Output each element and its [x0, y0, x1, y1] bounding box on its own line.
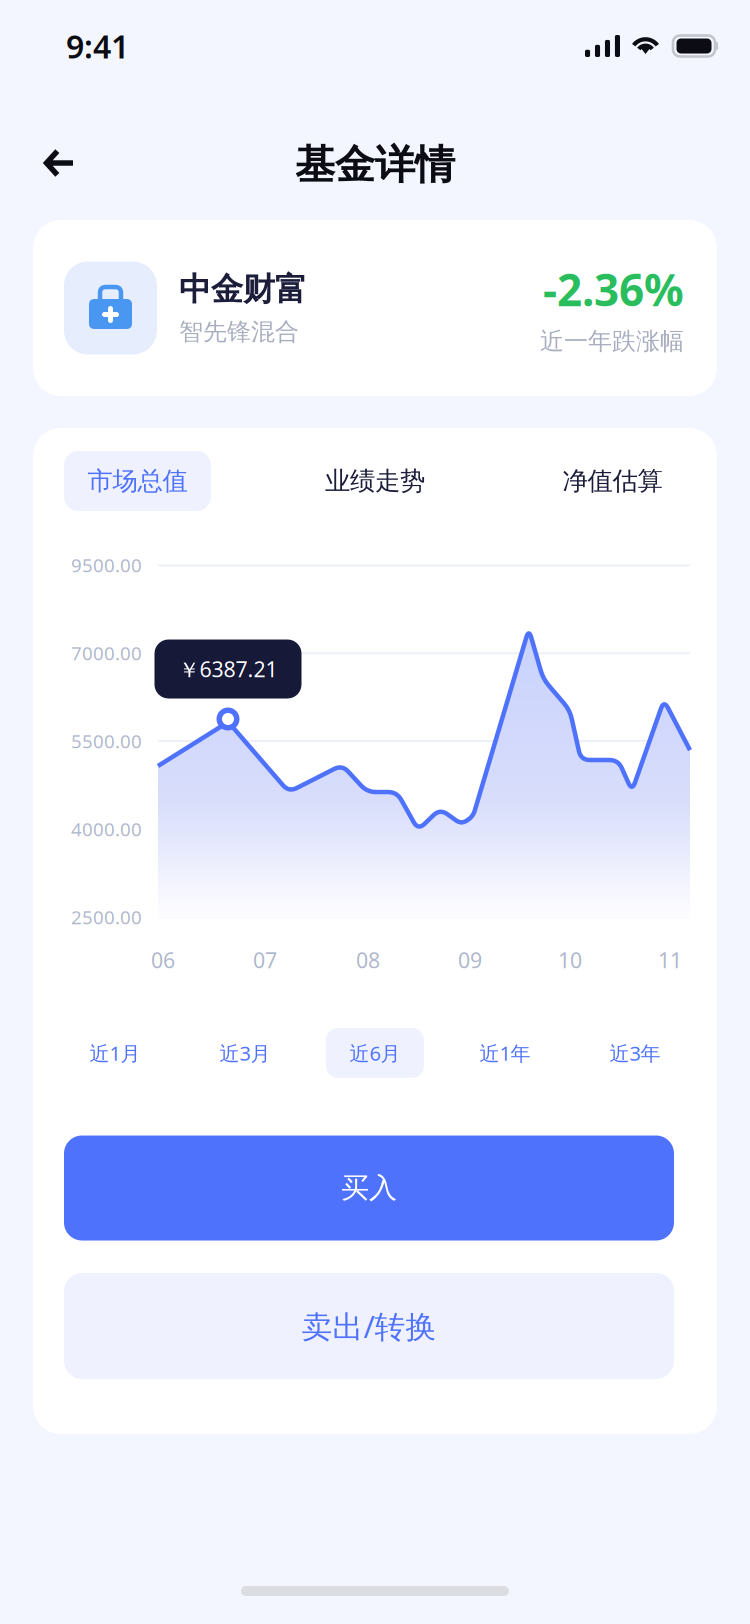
- staticText: 卖出/转换: [301, 1306, 436, 1346]
- button[interactable]: 卖出/转换: [64, 1273, 674, 1379]
- staticText: 9500.00: [71, 553, 142, 577]
- staticText: 7000.00: [71, 641, 142, 665]
- button[interactable]: 近1月: [66, 1028, 164, 1078]
- staticText: 11: [658, 946, 682, 974]
- staticText: 智先锋混合: [179, 317, 299, 346]
- button[interactable]: 返回: [25, 129, 93, 196]
- staticText: 中金财富: [179, 270, 307, 309]
- staticText: -2.36%: [543, 260, 684, 318]
- staticText: 近一年跌涨幅: [540, 326, 684, 356]
- staticText: 10: [558, 946, 582, 974]
- button[interactable]: 净值估算: [539, 451, 686, 511]
- button[interactable]: 近1年: [456, 1028, 554, 1078]
- button[interactable]: 市场总值: [64, 451, 211, 511]
- staticText: 近3月: [219, 1040, 270, 1066]
- button[interactable]: 近3月: [196, 1028, 294, 1078]
- button[interactable]: 近6月: [326, 1028, 424, 1078]
- staticText: 4000.00: [71, 817, 142, 841]
- button[interactable]: 业绩走势: [301, 451, 448, 511]
- staticText: 市场总值: [87, 465, 187, 496]
- staticText: 业绩走势: [325, 465, 425, 496]
- staticText: 近1月: [89, 1040, 140, 1066]
- staticText: 近1年: [479, 1040, 530, 1066]
- button[interactable]: 近3年: [586, 1028, 684, 1078]
- staticText: 基金详情: [295, 140, 455, 189]
- staticText: 09: [458, 946, 482, 974]
- staticText: 买入: [341, 1171, 397, 1205]
- staticText: 2500.00: [71, 905, 142, 929]
- staticText: 近6月: [349, 1040, 400, 1066]
- staticText: 9:41: [66, 25, 129, 67]
- staticText: 08: [356, 946, 380, 974]
- staticText: 07: [253, 946, 277, 974]
- staticText: 06: [151, 946, 175, 974]
- staticText: ￥6387.21: [178, 655, 277, 683]
- staticText: 5500.00: [71, 729, 142, 753]
- staticText: 近3年: [609, 1040, 660, 1066]
- button[interactable]: 买入: [64, 1135, 674, 1240]
- staticText: 净值估算: [562, 465, 662, 496]
